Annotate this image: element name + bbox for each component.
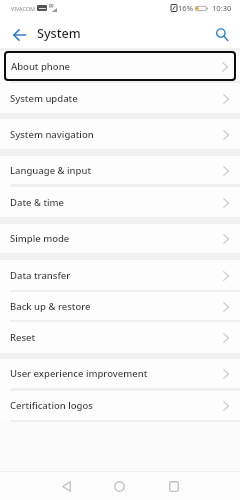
button[interactable]: Date & time [0, 187, 240, 217]
button[interactable]: Home [103, 474, 135, 499]
staticText: System [37, 25, 81, 42]
staticText: Date & time [10, 196, 65, 209]
staticText: Reset [10, 331, 36, 344]
staticText: Back up & restore [10, 300, 91, 313]
staticText: 16% [178, 3, 193, 13]
button[interactable]: System navigation [0, 119, 240, 149]
button[interactable]: Recents [158, 474, 190, 499]
button[interactable]: Back [50, 474, 82, 499]
button[interactable]: User experience improvement [0, 359, 240, 388]
staticText: VIVACOM [11, 5, 35, 12]
button[interactable]: Back [6, 22, 32, 48]
button[interactable]: Simple mode [0, 224, 240, 253]
button[interactable]: Data transfer [0, 260, 240, 290]
staticText: Data transfer [10, 269, 71, 282]
button[interactable]: About phone [4, 51, 236, 81]
staticText: System navigation [10, 128, 94, 141]
button[interactable]: Search [209, 22, 235, 48]
staticText: Certification logos [10, 399, 93, 412]
staticText: User experience improvement [10, 367, 148, 380]
button[interactable]: Reset [0, 322, 240, 353]
staticText: Simple mode [10, 232, 70, 245]
button[interactable]: Back up & restore [0, 292, 240, 320]
button[interactable]: Certification logos [0, 391, 240, 420]
staticText: System update [10, 92, 78, 105]
staticText: Language & input [10, 164, 92, 177]
staticText: 10:30 [212, 3, 232, 13]
button[interactable]: Language & input [0, 156, 240, 184]
button[interactable]: System update [0, 83, 240, 113]
staticText: About phone [11, 60, 71, 73]
